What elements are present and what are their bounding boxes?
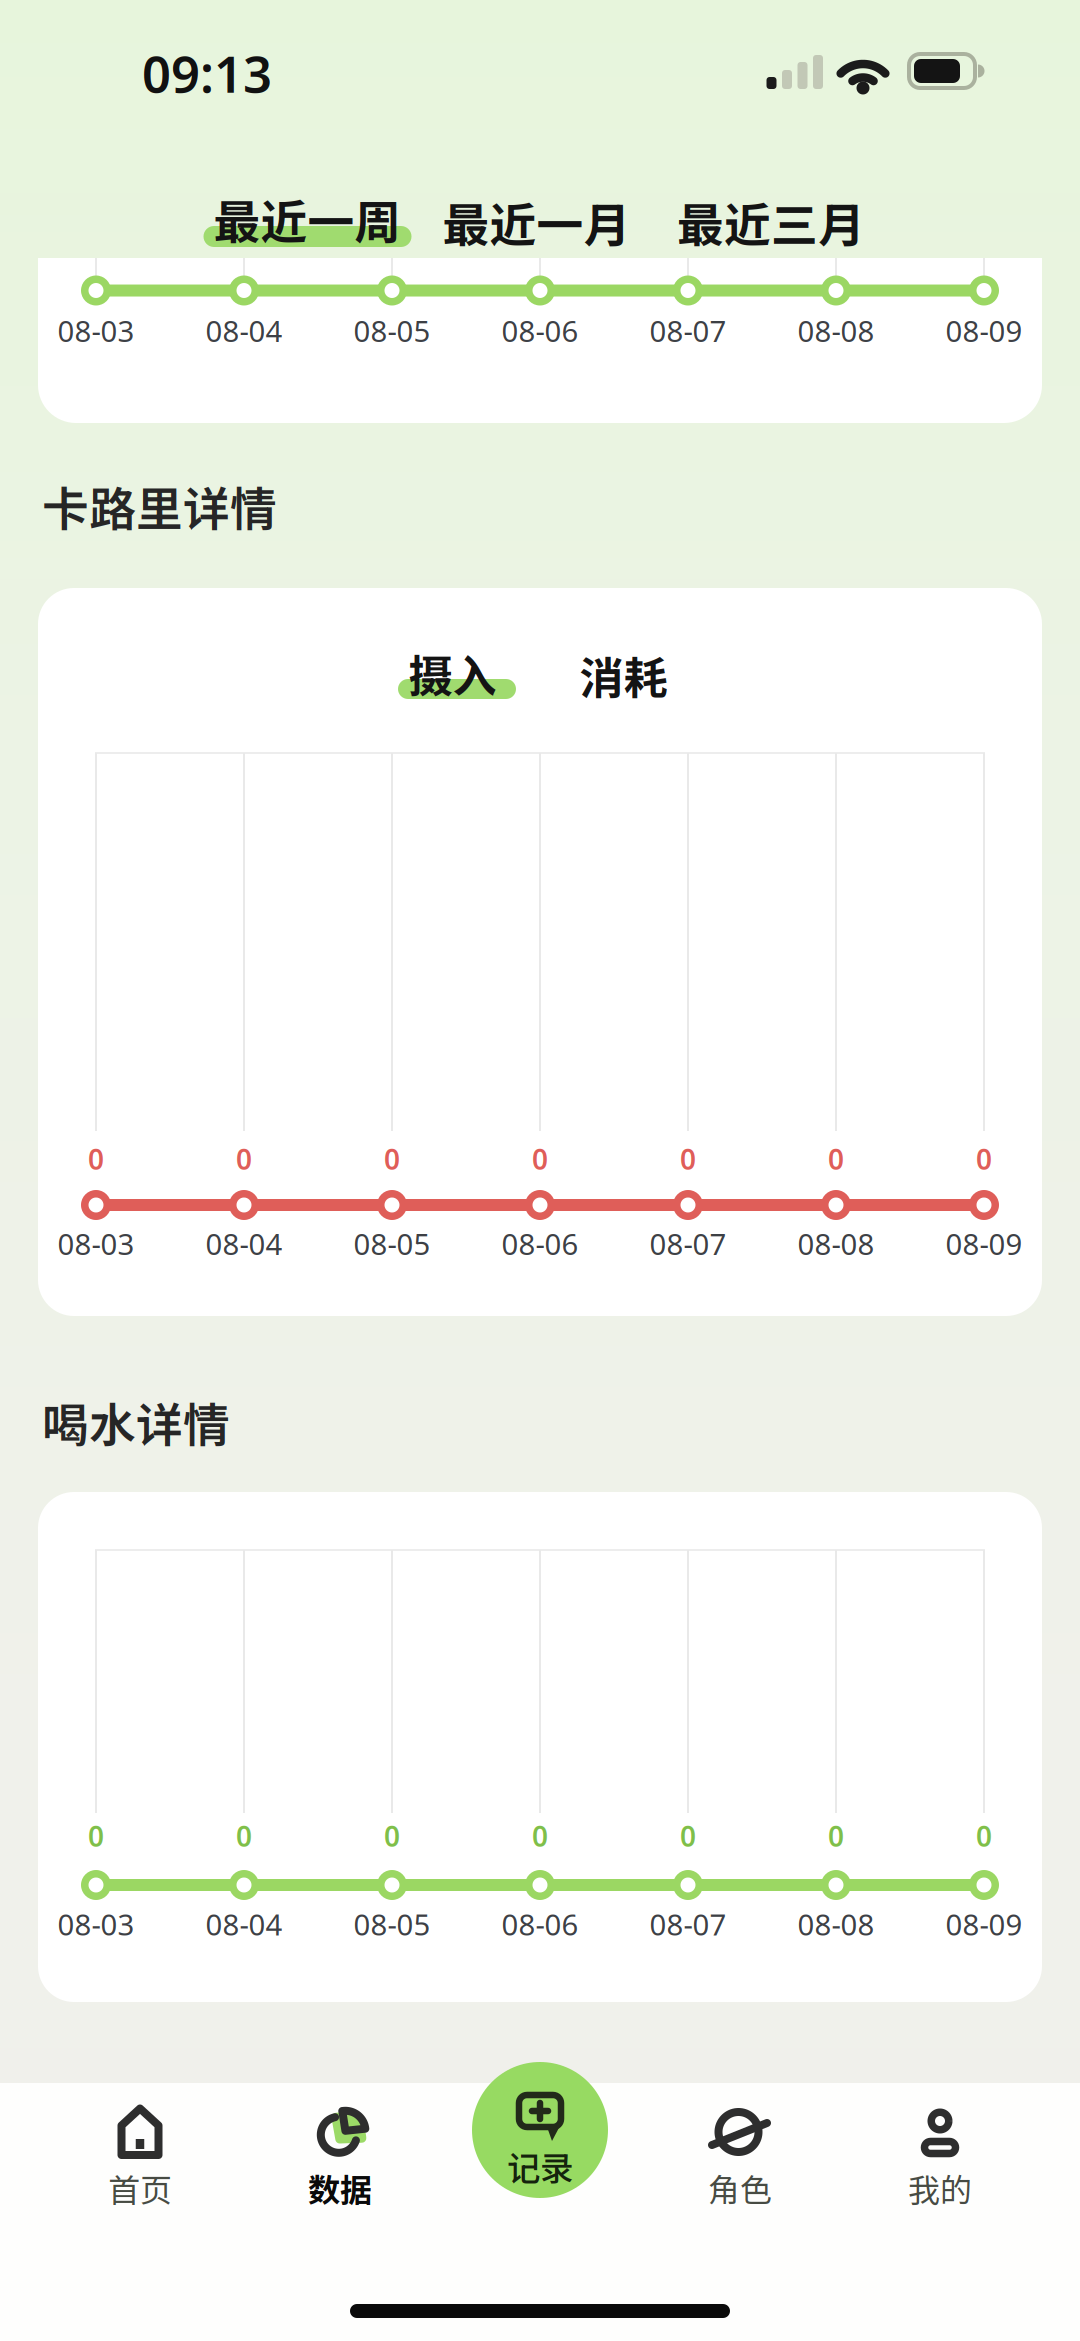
staticText: 08-07 [649, 1904, 726, 1943]
staticText: 08-06 [501, 1224, 578, 1263]
staticText: 08-05 [353, 1904, 430, 1943]
staticText: 0 [680, 1140, 696, 1178]
staticText: 摄入 [408, 641, 496, 705]
staticText: 08-06 [501, 1904, 578, 1943]
staticText: 08-05 [353, 1224, 430, 1263]
staticText: 卡路里详情 [42, 472, 277, 540]
staticText: 0 [976, 1140, 992, 1178]
staticText: 0 [384, 1140, 400, 1178]
staticText: 08-04 [205, 311, 282, 350]
staticText: 最近一周 [213, 185, 401, 253]
staticText: 0 [384, 1817, 400, 1855]
staticText: 08-03 [57, 311, 134, 350]
button[interactable]: 最近三月 [661, 190, 881, 254]
staticText: 08-04 [205, 1904, 282, 1943]
staticText: 08-04 [205, 1224, 282, 1263]
staticText: 消耗 [579, 643, 667, 707]
staticText: 09:13 [142, 39, 272, 107]
staticText: 0 [828, 1817, 844, 1855]
staticText: 角色 [708, 2165, 772, 2211]
staticText: 0 [976, 1817, 992, 1855]
button[interactable]: 记录 [470, 2060, 610, 2200]
staticText: 08-07 [649, 311, 726, 350]
staticText: 0 [236, 1817, 252, 1855]
staticText: 0 [680, 1817, 696, 1855]
staticText: 0 [532, 1140, 548, 1178]
staticText: 数据 [308, 2165, 372, 2211]
staticText: 首页 [108, 2165, 172, 2211]
button[interactable]: 摄入 [387, 640, 517, 710]
staticText: 08-09 [945, 311, 1022, 350]
staticText: 喝水详情 [42, 1388, 230, 1456]
staticText: 0 [236, 1140, 252, 1178]
button[interactable]: 首页 [40, 2083, 240, 2213]
staticText: 我的 [908, 2165, 972, 2211]
button[interactable]: 数据 [240, 2083, 440, 2213]
staticText: 最近三月 [677, 188, 865, 256]
staticText: 0 [532, 1817, 548, 1855]
staticText: 记录 [507, 2142, 573, 2190]
staticText: 08-08 [797, 1224, 874, 1263]
staticText: 08-09 [945, 1904, 1022, 1943]
staticText: 08-08 [797, 1904, 874, 1943]
staticText: 最近一月 [442, 188, 630, 256]
button[interactable]: 我的 [840, 2083, 1040, 2213]
button[interactable]: 最近一月 [426, 190, 646, 254]
staticText: 08-03 [57, 1224, 134, 1263]
staticText: 08-08 [797, 311, 874, 350]
button[interactable]: 最近一周 [197, 190, 417, 254]
button[interactable]: 消耗 [558, 640, 688, 710]
staticText: 08-05 [353, 311, 430, 350]
staticText: 0 [88, 1140, 104, 1178]
staticText: 08-03 [57, 1904, 134, 1943]
staticText: 0 [828, 1140, 844, 1178]
staticText: 0 [88, 1817, 104, 1855]
staticText: 08-07 [649, 1224, 726, 1263]
button[interactable]: 角色 [640, 2083, 840, 2213]
staticText: 08-09 [945, 1224, 1022, 1263]
staticText: 08-06 [501, 311, 578, 350]
